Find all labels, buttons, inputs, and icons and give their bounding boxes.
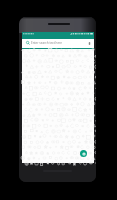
staticText: Enter search text here — [31, 41, 62, 45]
button[interactable]: Enter search text here — [22, 39, 94, 49]
button[interactable]: New chat — [80, 150, 87, 157]
